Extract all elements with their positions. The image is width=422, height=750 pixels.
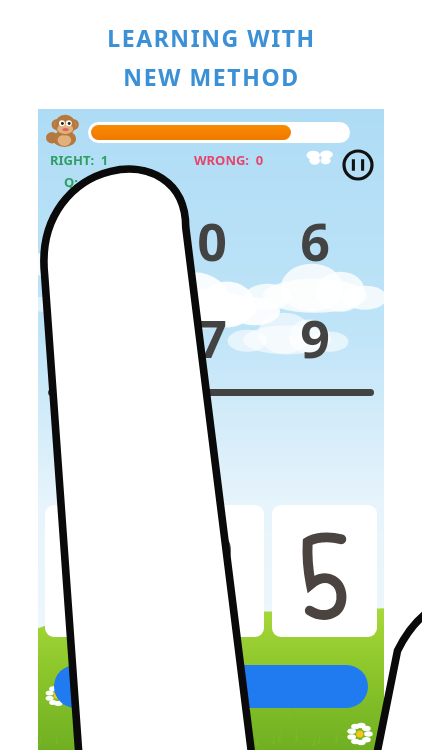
staticText: Q: 1: [64, 173, 89, 191]
staticText: WRONG: 0: [194, 151, 264, 169]
staticText: NEW METHOD: [123, 61, 300, 92]
staticText: LEARNING WITH: [107, 22, 316, 53]
button[interactable]: Done: [54, 665, 368, 708]
button[interactable]: [272, 505, 377, 637]
button[interactable]: Pause: [342, 149, 374, 181]
staticText: 9: [300, 302, 330, 373]
button[interactable]: [45, 505, 151, 637]
staticText: 0: [197, 205, 227, 276]
staticText: 7: [197, 302, 227, 373]
button[interactable]: [159, 505, 264, 637]
staticText: RIGHT: 1: [50, 151, 109, 169]
staticText: 6: [300, 205, 330, 276]
